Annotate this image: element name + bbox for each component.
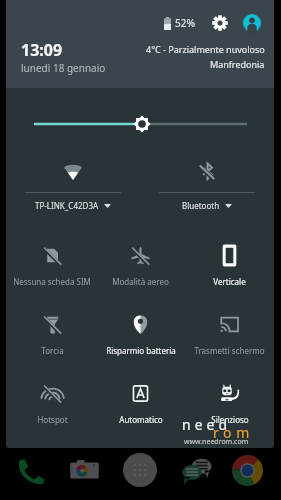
button[interactable]: Verticale bbox=[185, 229, 274, 298]
button[interactable]: Settings bbox=[210, 13, 230, 33]
button[interactable]: Trasmetti schermo bbox=[185, 298, 274, 367]
button[interactable]: TP-LINK_C42D3A bbox=[6, 150, 140, 218]
staticText: www.needrom.com bbox=[184, 437, 249, 447]
button[interactable]: Messages bbox=[177, 451, 215, 489]
button[interactable]: Camera bbox=[65, 451, 103, 489]
button[interactable]: User profile bbox=[242, 13, 262, 33]
staticText: Risparmio batteria bbox=[106, 345, 176, 356]
staticText: Automatico bbox=[119, 414, 163, 425]
button[interactable]: Hotspot bbox=[8, 367, 96, 436]
staticText: 13:09 bbox=[21, 39, 63, 61]
button[interactable]: Nessuna scheda SIM bbox=[8, 229, 96, 298]
button[interactable]: Torcia bbox=[8, 298, 96, 367]
staticText: TP-LINK_C42D3A bbox=[35, 200, 99, 211]
staticText: 52% bbox=[175, 16, 195, 30]
staticText: Bluetooth bbox=[182, 200, 220, 211]
staticText: Torcia bbox=[41, 345, 64, 356]
button[interactable]: Risparmio batteria bbox=[96, 298, 185, 367]
staticText: rom bbox=[213, 423, 254, 442]
button[interactable]: All apps bbox=[121, 451, 159, 489]
staticText: 4°C - Parzialmente nuvoloso bbox=[146, 43, 265, 55]
staticText: Nessuna scheda SIM bbox=[13, 276, 91, 287]
button[interactable]: Silenzioso bbox=[185, 367, 274, 436]
staticText: lunedì 18 gennaio bbox=[21, 61, 106, 75]
staticText: Trasmetti schermo bbox=[194, 345, 265, 356]
staticText: Hotspot bbox=[37, 414, 68, 425]
button[interactable]: Chrome bbox=[228, 451, 266, 489]
staticText: need bbox=[182, 415, 232, 434]
button[interactable]: Phone bbox=[11, 451, 49, 489]
button[interactable]: Modalità aereo bbox=[96, 229, 185, 298]
button[interactable]: Brightness bbox=[6, 108, 274, 140]
staticText: Verticale bbox=[213, 276, 246, 287]
staticText: Manfredonia bbox=[210, 58, 265, 70]
button[interactable]: Automatico bbox=[96, 367, 185, 436]
button[interactable]: Bluetooth bbox=[140, 150, 274, 218]
staticText: Modalità aereo bbox=[112, 276, 169, 287]
staticText: Silenzioso bbox=[211, 414, 249, 425]
